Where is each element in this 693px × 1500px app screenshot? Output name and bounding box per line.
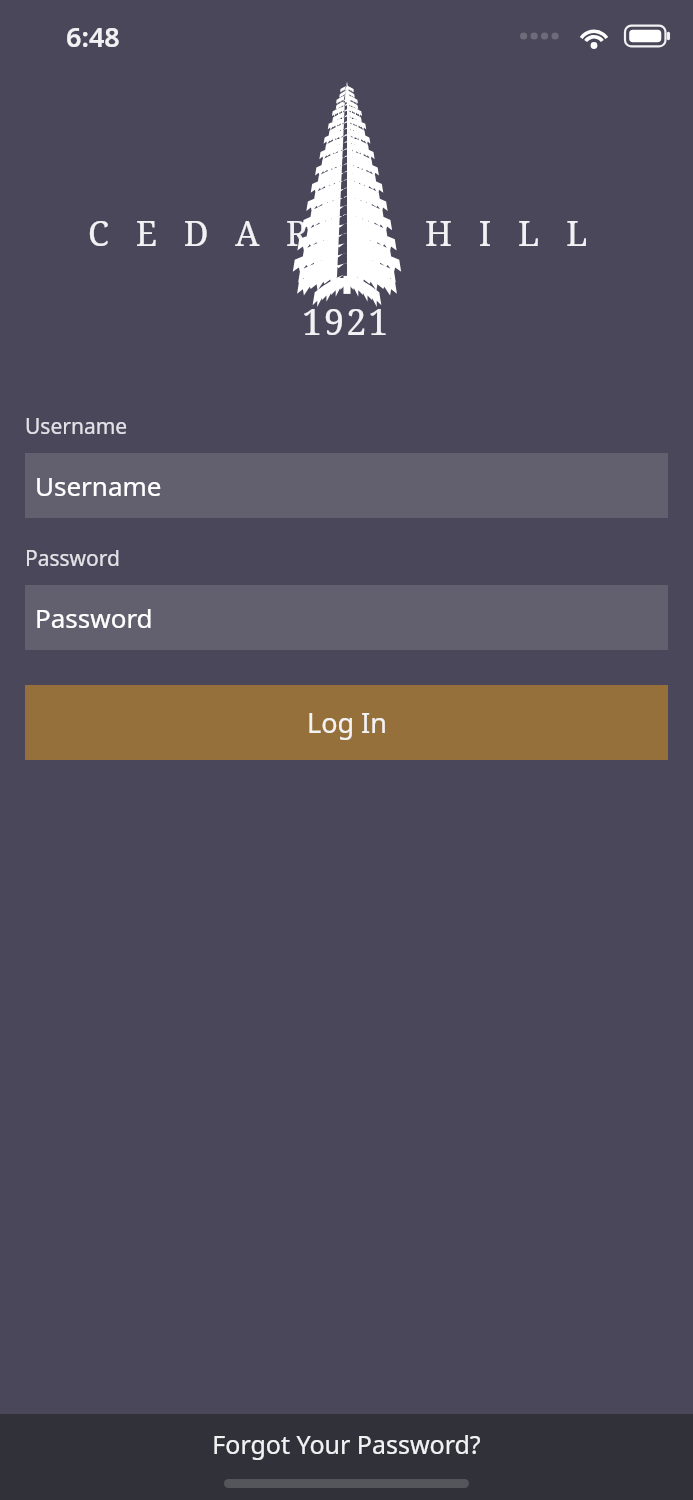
staticText: H I L L: [425, 210, 597, 256]
button[interactable]: Username: [25, 453, 668, 518]
button[interactable]: Password: [25, 585, 668, 650]
staticText: Password: [25, 544, 120, 573]
staticText: Username: [25, 412, 128, 441]
staticText: 6:48: [66, 18, 120, 55]
button[interactable]: Forgot Your Password?: [0, 1414, 693, 1474]
staticText: 1921: [302, 297, 391, 346]
staticText: C E D A R: [88, 210, 318, 256]
staticText: Password: [35, 600, 153, 635]
staticText: Log In: [307, 704, 387, 741]
staticText: Username: [35, 468, 162, 503]
staticText: Forgot Your Password?: [212, 1427, 481, 1461]
button[interactable]: Log In: [25, 685, 668, 760]
